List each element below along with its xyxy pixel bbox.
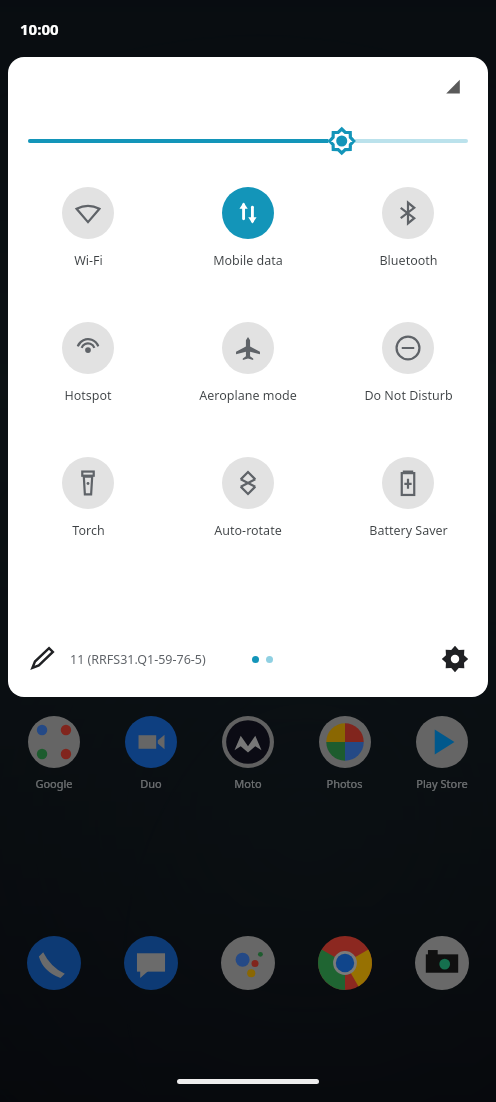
staticText: Mobile data [213,252,283,269]
button[interactable]: Duo [102,716,199,791]
button[interactable]: Auto-rotate [168,457,328,539]
staticText: Photos [326,776,363,791]
button[interactable]: Bluetooth [328,187,488,269]
staticText: Battery Saver [369,522,448,539]
staticText: Duo [140,776,162,791]
button[interactable]: ASSIST [199,936,296,990]
staticText: Bluetooth [379,252,438,269]
button[interactable]: MSG [102,936,199,990]
button[interactable]: Torch [8,457,168,539]
staticText: Play Store [416,776,468,791]
button[interactable]: Google [6,716,102,791]
staticText: Google [35,776,73,791]
button[interactable]: Wi-Fi [8,187,168,269]
button[interactable]: Brightness [8,119,488,163]
staticText: 11 (RRFS31.Q1-59-76-5) [70,651,206,668]
staticText: Wi-Fi [74,252,103,269]
staticText: Hotspot [64,387,112,404]
staticText: Moto [234,776,262,791]
button[interactable]: Edit tiles [26,643,58,675]
staticText: Torch [72,522,105,539]
button[interactable]: Mobile signal [436,71,470,105]
button[interactable]: Do Not Disturb [328,322,488,404]
button[interactable]: CHROME [296,936,393,990]
button[interactable]: Mobile data [168,187,328,269]
button[interactable]: Hotspot [8,322,168,404]
button[interactable]: Battery Saver [328,457,488,539]
staticText: Aeroplane mode [199,387,297,404]
staticText: 10:00 [20,19,59,39]
button[interactable]: PHONE [6,936,102,990]
button[interactable]: Moto [199,716,296,791]
button[interactable]: Settings [440,644,470,674]
button[interactable]: Aeroplane mode [168,322,328,404]
button[interactable]: CAMERA [393,936,490,990]
button[interactable]: Play Store [393,716,490,791]
staticText: Do Not Disturb [364,387,453,404]
button[interactable]: Photos [296,716,393,791]
staticText: Auto-rotate [214,522,282,539]
